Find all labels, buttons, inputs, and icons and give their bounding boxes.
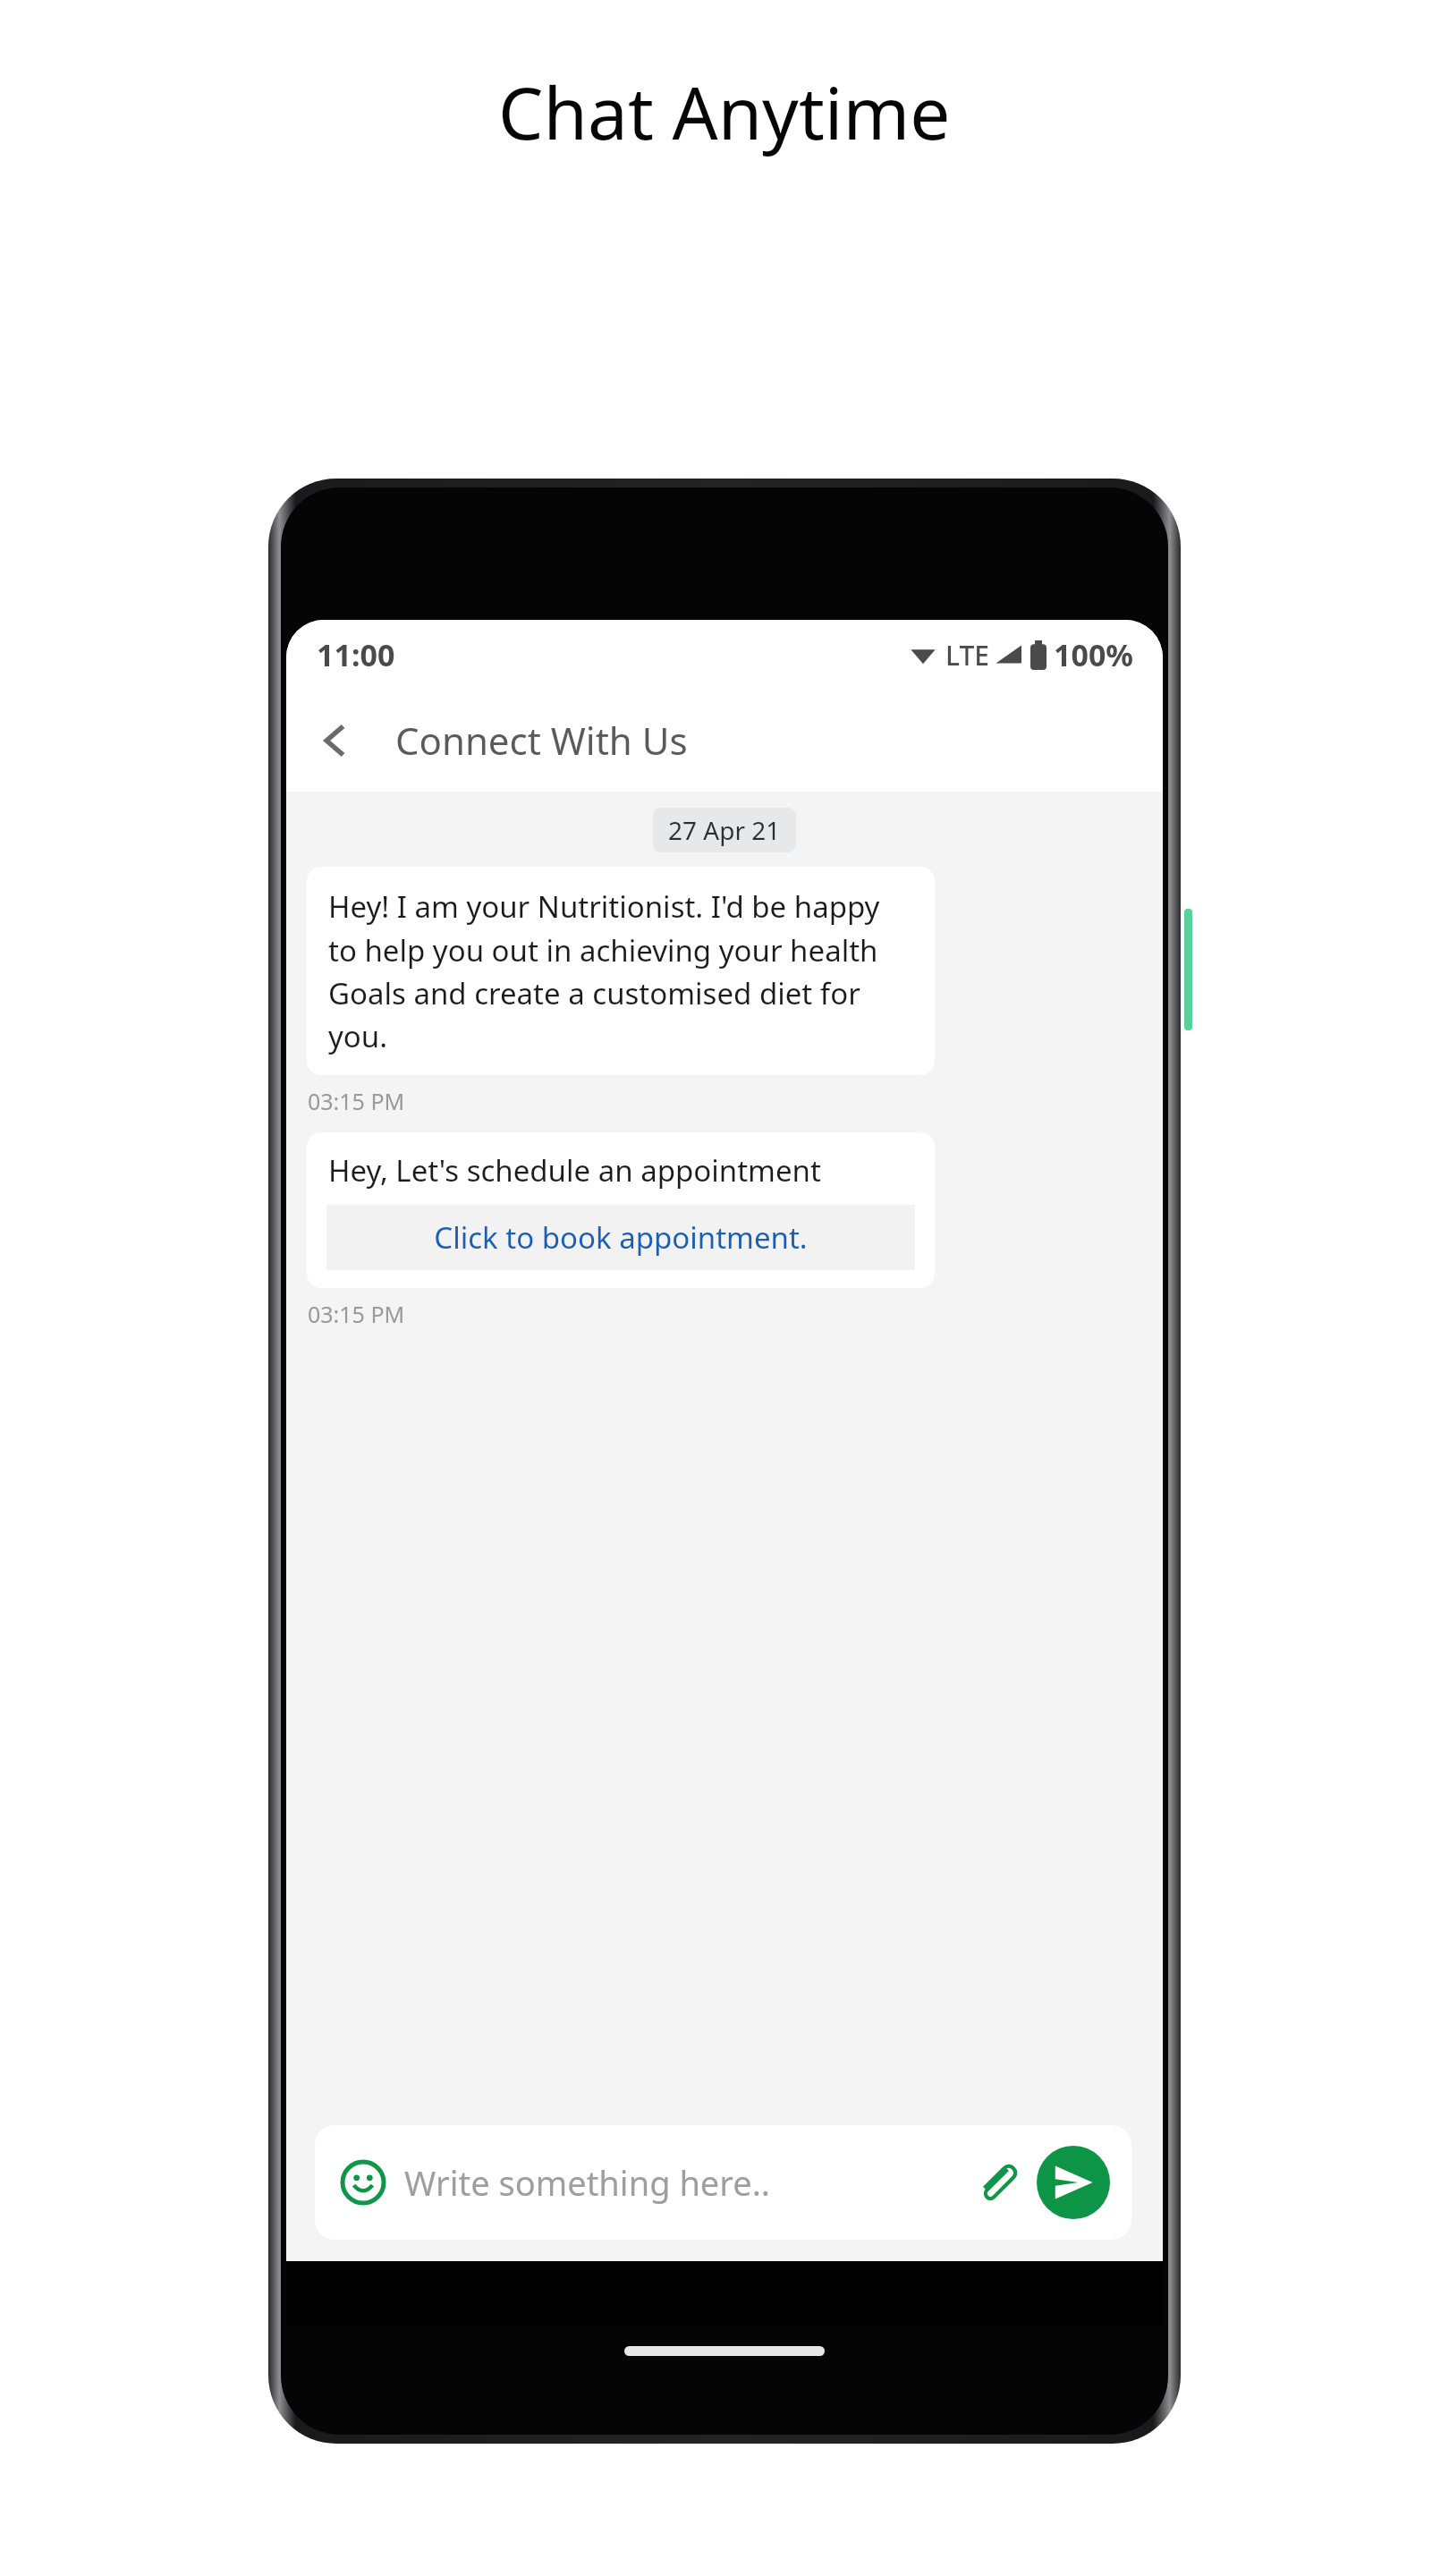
staticText: Hey! I am your Nutritionist. I'd be happ…: [328, 886, 913, 1055]
button[interactable]: Attach file: [969, 2155, 1024, 2210]
staticText: Click to book appointment.: [434, 1217, 808, 1258]
staticText: Connect With Us: [395, 715, 688, 766]
staticText: LTE: [945, 637, 989, 674]
other: Power button: [1184, 909, 1192, 1030]
button[interactable]: Hey, Let's schedule an appointment: [307, 1132, 935, 1288]
button[interactable]: Emoji: [336, 2156, 390, 2209]
staticText: Write something here..: [404, 2159, 969, 2206]
staticText: Hey, Let's schedule an appointment: [328, 1150, 821, 1191]
button[interactable]: Back: [299, 703, 374, 778]
staticText: Chat Anytime: [498, 63, 951, 160]
button[interactable]: Send: [1037, 2146, 1110, 2219]
staticText: 11:00: [317, 634, 395, 675]
staticText: 100%: [1054, 634, 1134, 675]
staticText: 27 Apr 21: [668, 813, 781, 847]
button[interactable]: Hey! I am your Nutritionist. I'd be happ…: [307, 867, 935, 1075]
staticText: 03:15 PM: [308, 1299, 405, 1329]
staticText: 03:15 PM: [308, 1086, 405, 1116]
button[interactable]: Click to book appointment.: [326, 1205, 915, 1270]
